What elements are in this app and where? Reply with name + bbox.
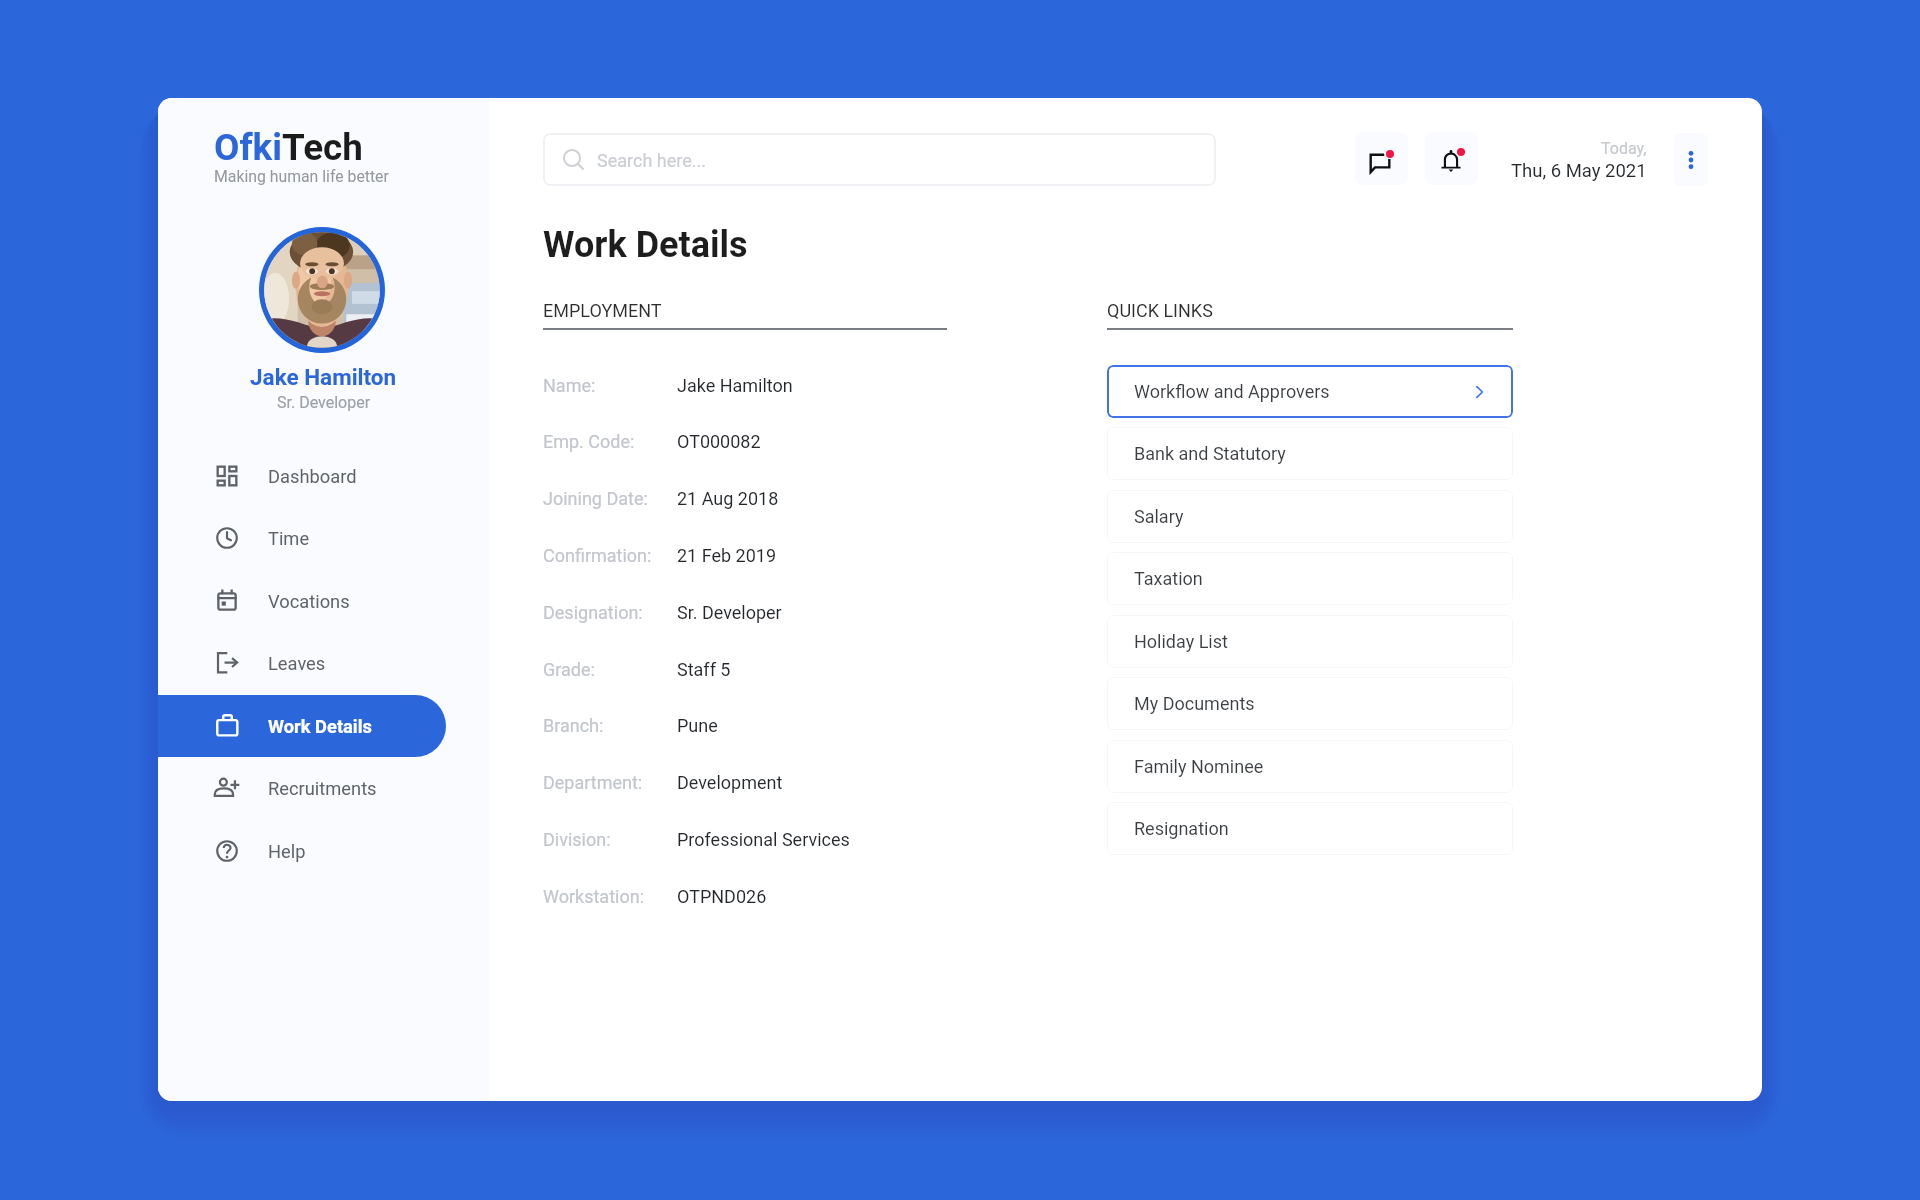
staticText: Division:	[543, 829, 611, 850]
staticText: Dashboard	[268, 466, 357, 487]
button[interactable]: Family Nominee	[1107, 740, 1513, 793]
button[interactable]: Resignation	[1107, 802, 1513, 855]
button[interactable]: Dashboard	[158, 445, 446, 507]
staticText: Today,	[1601, 139, 1647, 158]
button[interactable]: Help	[158, 820, 446, 882]
staticText: Recruitments	[268, 778, 377, 799]
button[interactable]: Notifications	[1425, 132, 1478, 185]
button[interactable]: Workflow and Approvers	[1107, 365, 1513, 418]
staticText: Making human life better	[214, 167, 389, 186]
staticText: Taxation	[1134, 568, 1203, 589]
staticText: OfkiTech	[214, 126, 363, 169]
staticText: EMPLOYMENT	[543, 300, 662, 321]
button[interactable]: Time	[158, 507, 446, 569]
button[interactable]: Work Details	[158, 695, 446, 757]
staticText: Grade:	[543, 659, 595, 680]
staticText: My Documents	[1134, 693, 1255, 714]
staticText: Search here...	[597, 150, 706, 171]
staticText: Professional Services	[677, 829, 850, 850]
staticText: Time	[268, 528, 310, 549]
button[interactable]: Salary	[1107, 490, 1513, 543]
staticText: Resignation	[1134, 818, 1229, 839]
staticText: Confirmation:	[543, 545, 652, 566]
button[interactable]: Taxation	[1107, 552, 1513, 605]
button[interactable]: My Documents	[1107, 677, 1513, 730]
staticText: Pune	[677, 715, 718, 736]
staticText: Jake Hamilton	[250, 364, 397, 390]
staticText: Name:	[543, 375, 596, 396]
staticText: Sr. Developer	[677, 602, 782, 623]
button[interactable]: Messages	[1355, 132, 1408, 185]
staticText: Workstation:	[543, 886, 644, 907]
staticText: Department:	[543, 772, 643, 793]
staticText: 21 Aug 2018	[677, 488, 779, 509]
staticText: 21 Feb 2019	[677, 545, 777, 566]
staticText: Holiday List	[1134, 631, 1228, 652]
staticText: Jake Hamilton	[677, 375, 793, 396]
staticText: OTPND026	[677, 886, 767, 907]
staticText: Designation:	[543, 602, 643, 623]
button[interactable]: Vocations	[158, 570, 446, 632]
staticText: Work Details	[543, 224, 748, 266]
staticText: Development	[677, 772, 783, 793]
button[interactable]: More options	[1674, 133, 1708, 186]
staticText: Work Details	[268, 716, 372, 737]
staticText: Workflow and Approvers	[1134, 381, 1330, 402]
button[interactable]: Recruitments	[158, 757, 446, 819]
staticText: Joining Date:	[543, 488, 648, 509]
staticText: Emp. Code:	[543, 431, 635, 452]
staticText: Thu, 6 May 2021	[1511, 160, 1647, 182]
staticText: Sr. Developer	[277, 393, 371, 412]
staticText: Family Nominee	[1134, 756, 1264, 777]
staticText: Help	[268, 841, 306, 862]
button[interactable]: Leaves	[158, 632, 446, 694]
staticText: Branch:	[543, 715, 604, 736]
staticText: QUICK LINKS	[1107, 300, 1213, 321]
staticText: Leaves	[268, 653, 326, 674]
staticText: Vocations	[268, 591, 350, 612]
staticText: Staff 5	[677, 659, 731, 680]
staticText: Salary	[1134, 506, 1184, 527]
button[interactable]: Bank and Statutory	[1107, 427, 1513, 480]
staticText: Bank and Statutory	[1134, 443, 1286, 464]
button[interactable]: Search here...	[543, 133, 1216, 186]
staticText: OT000082	[677, 431, 761, 452]
button[interactable]: Holiday List	[1107, 615, 1513, 668]
